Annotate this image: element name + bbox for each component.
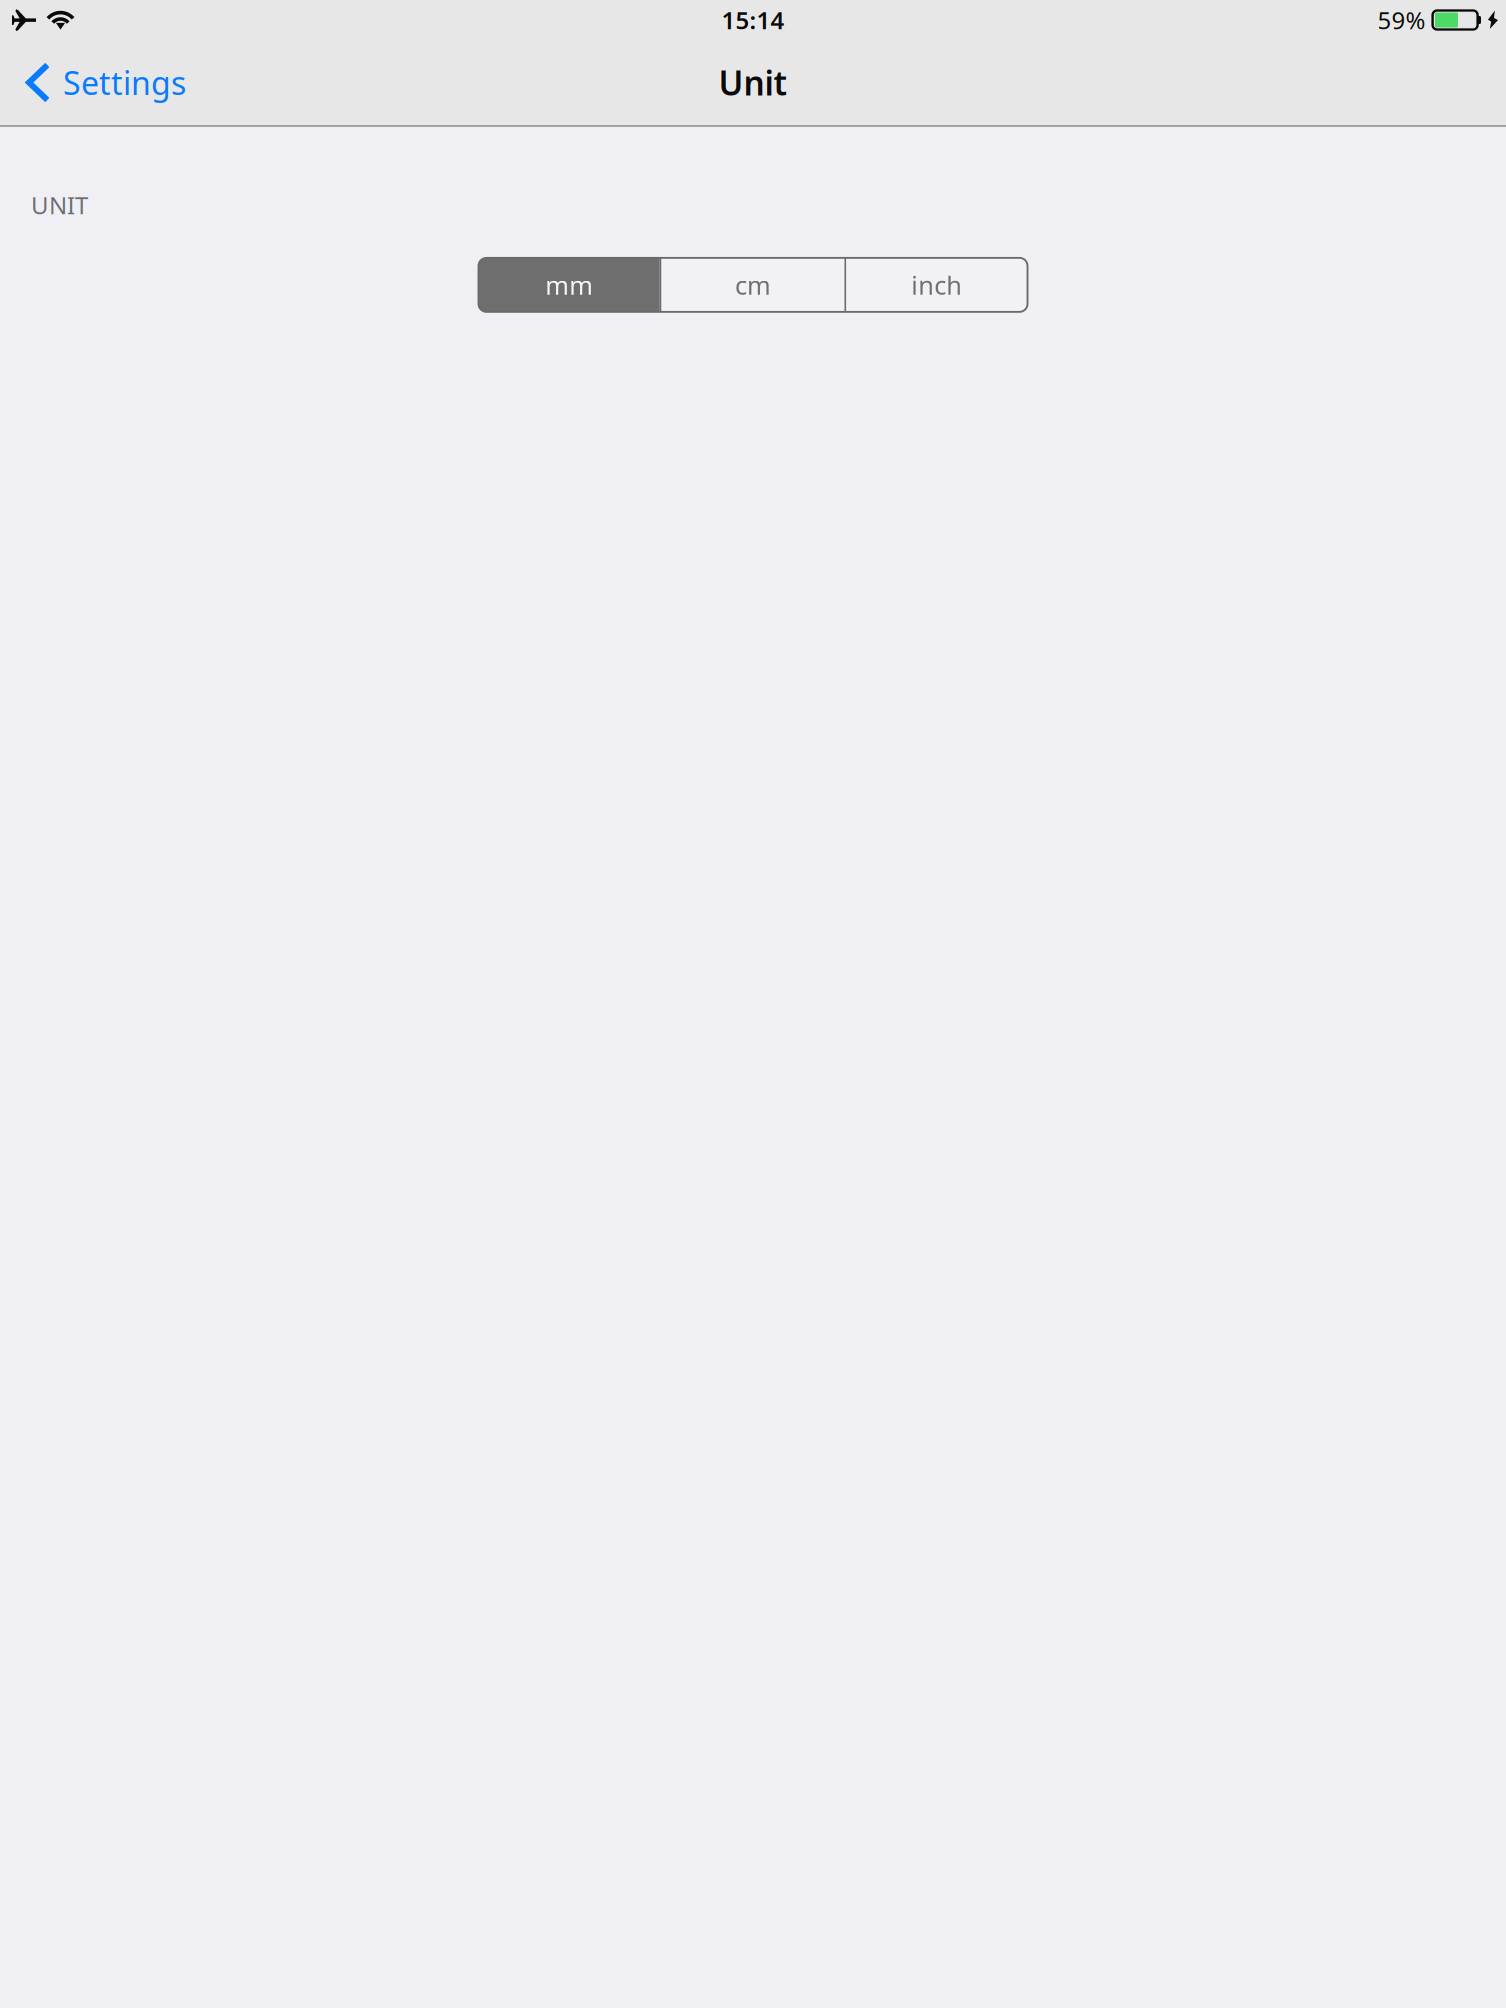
button[interactable]: inch bbox=[846, 258, 1027, 312]
staticText: mm bbox=[545, 268, 593, 302]
button[interactable]: mm bbox=[479, 258, 660, 312]
staticText: 15:14 bbox=[721, 4, 784, 36]
staticText: Unit bbox=[718, 60, 787, 105]
staticText: inch bbox=[911, 268, 962, 302]
staticText: cm bbox=[735, 268, 771, 302]
button[interactable]: cm bbox=[661, 258, 844, 312]
staticText: 59% bbox=[1378, 4, 1426, 36]
staticText: UNIT bbox=[31, 189, 88, 221]
button[interactable]: Back to Settings bbox=[0, 40, 202, 125]
staticText: Settings bbox=[63, 61, 186, 104]
